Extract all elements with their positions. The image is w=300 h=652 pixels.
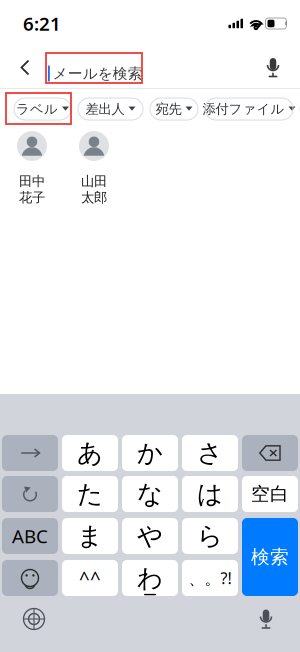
staticText: ABC (12, 524, 48, 548)
button[interactable] (2, 435, 58, 471)
button[interactable]: ラベル (14, 98, 71, 120)
button[interactable] (2, 476, 58, 512)
button[interactable]: 添付ファイル (205, 98, 293, 120)
staticText: 宛先 (155, 101, 181, 117)
button[interactable]: 検索 (242, 518, 298, 596)
button[interactable]: は (182, 476, 238, 512)
staticText: 空白 (251, 482, 289, 505)
button[interactable]: 音声入力 (254, 47, 292, 88)
button[interactable]: 、。?! (182, 560, 238, 596)
button[interactable]: 音声入力 (238, 601, 294, 637)
button[interactable]: ら (182, 518, 238, 554)
button[interactable]: あ (62, 435, 118, 471)
button[interactable]: 宛先 (150, 98, 198, 120)
staticText: あ (77, 437, 103, 468)
staticText: 6:21 (23, 11, 61, 36)
button[interactable]: た (62, 476, 118, 512)
button[interactable]: 山田 (70, 131, 118, 206)
staticText: 花子 (19, 189, 45, 206)
staticText: 検索 (251, 545, 289, 568)
staticText: ら (197, 520, 223, 551)
staticText: 山田 (81, 173, 107, 189)
button[interactable] (2, 560, 58, 596)
button[interactable]: さ (182, 435, 238, 471)
staticText: さ (197, 437, 223, 468)
staticText: な (137, 478, 163, 509)
button[interactable]: か (122, 435, 178, 471)
staticText: ま (77, 520, 103, 551)
staticText: 添付ファイル (202, 101, 284, 117)
staticText: た (77, 478, 103, 509)
staticText: 、。?! (188, 567, 231, 589)
staticText: か (137, 437, 163, 468)
staticText: ^^ (79, 566, 101, 590)
button[interactable]: キーボード切り替え (6, 601, 62, 637)
staticText: は (197, 478, 223, 509)
staticText: や (137, 520, 163, 551)
staticText: わ (137, 563, 163, 594)
staticText: 太郎 (81, 189, 107, 206)
button[interactable]: 戻る (6, 47, 44, 88)
staticText: メールを検索 (53, 64, 143, 82)
button[interactable]: ま (62, 518, 118, 554)
button[interactable]: わ (122, 560, 178, 596)
button[interactable]: メールを検索 (44, 58, 140, 88)
button[interactable]: 空白 (242, 476, 298, 512)
button[interactable]: や (122, 518, 178, 554)
button[interactable]: 田中 (8, 131, 56, 206)
staticText: ラベル (16, 101, 58, 117)
staticText: 田中 (19, 173, 45, 189)
button[interactable] (242, 435, 298, 471)
button[interactable]: ^^ (62, 560, 118, 596)
button[interactable]: 差出人 (78, 98, 143, 120)
staticText: 差出人 (85, 101, 124, 117)
button[interactable]: な (122, 476, 178, 512)
button[interactable]: ABC (2, 518, 58, 554)
